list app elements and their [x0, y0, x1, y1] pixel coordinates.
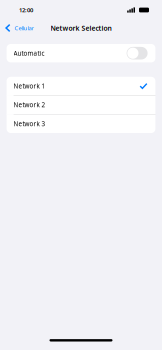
staticText: Network Selection — [50, 23, 111, 33]
staticText: 12:00 — [19, 6, 33, 14]
button[interactable]: Network 2 — [7, 96, 155, 115]
staticText: Network 2 — [14, 101, 46, 109]
staticText: Cellular — [14, 24, 33, 32]
button[interactable]: Network 1 — [7, 77, 155, 96]
staticText: Network 1 — [14, 82, 46, 90]
button[interactable]: Cellular — [0, 21, 37, 35]
staticText: Network 3 — [14, 119, 46, 128]
button[interactable]: Automatic — [7, 44, 155, 62]
button[interactable]: Network 3 — [7, 115, 155, 133]
staticText: Automatic — [14, 49, 45, 57]
